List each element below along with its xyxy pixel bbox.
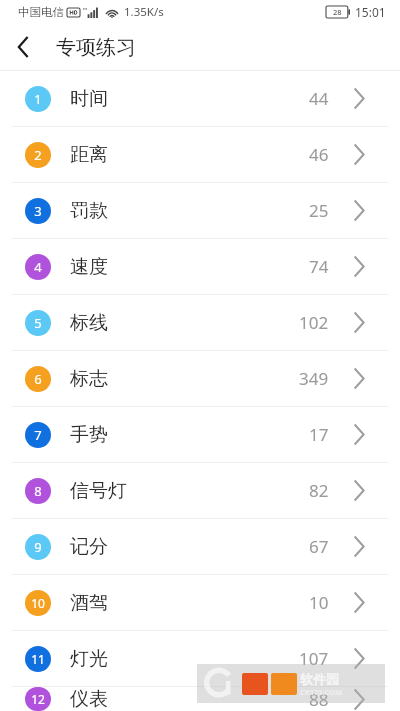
button[interactable]: 返回 (0, 24, 46, 70)
staticText: 349 (299, 367, 329, 390)
staticText: 灯光 (70, 647, 108, 671)
button[interactable]: 8 (0, 463, 400, 518)
staticText: 信号灯 (70, 479, 127, 503)
button[interactable]: 2 (0, 127, 400, 182)
button[interactable]: 9 (0, 519, 400, 574)
staticText: 12 (31, 691, 45, 707)
staticText: 3 (34, 202, 42, 220)
staticText: CR173.COM (300, 687, 343, 697)
staticText: 8 (34, 482, 42, 500)
staticText: 标线 (70, 311, 108, 335)
button[interactable]: 5 (0, 295, 400, 350)
staticText: 10 (31, 595, 45, 611)
staticText: 专项练习 (56, 35, 136, 60)
staticText: 仪表 (70, 687, 108, 711)
button[interactable]: 6 (0, 351, 400, 406)
staticText: 4 (34, 258, 42, 276)
button[interactable]: 12 (0, 687, 400, 711)
staticText: 102 (299, 311, 329, 334)
button[interactable]: 10 (0, 575, 400, 630)
staticText: 6 (34, 370, 42, 388)
staticText: 28 (333, 7, 342, 17)
staticText: 74 (309, 255, 329, 278)
staticText: 酒驾 (70, 591, 108, 615)
staticText: 1.35K/s (124, 4, 164, 20)
button[interactable]: 4 (0, 239, 400, 294)
staticText: 7 (34, 426, 42, 444)
staticText: 1 (34, 90, 42, 108)
staticText: 15:01 (355, 4, 386, 20)
staticText: 88 (309, 688, 329, 711)
button[interactable]: 11 (0, 631, 400, 686)
staticText: 11 (31, 651, 45, 667)
staticText: 速度 (70, 255, 108, 279)
staticText: 17 (309, 423, 329, 446)
staticText: 107 (299, 647, 329, 670)
staticText: 罚款 (70, 199, 108, 223)
button[interactable]: 3 (0, 183, 400, 238)
staticText: 软件园 (300, 671, 339, 687)
button[interactable]: 7 (0, 407, 400, 462)
staticText: 2 (34, 146, 42, 164)
staticText: 中国电信 (18, 5, 64, 19)
staticText: 9 (34, 538, 42, 556)
staticText: 记分 (70, 535, 108, 559)
staticText: 25 (309, 199, 329, 222)
staticText: 82 (309, 479, 329, 502)
staticText: 67 (309, 535, 329, 558)
staticText: 44 (309, 87, 329, 110)
staticText: 5 (34, 314, 42, 332)
staticText: 距离 (70, 143, 108, 167)
staticText: 标志 (70, 367, 108, 391)
button[interactable]: 1 (0, 71, 400, 126)
staticText: 46 (309, 143, 329, 166)
staticText: 手势 (70, 423, 108, 447)
staticText: 时间 (70, 87, 108, 111)
staticText: 10 (309, 591, 329, 614)
